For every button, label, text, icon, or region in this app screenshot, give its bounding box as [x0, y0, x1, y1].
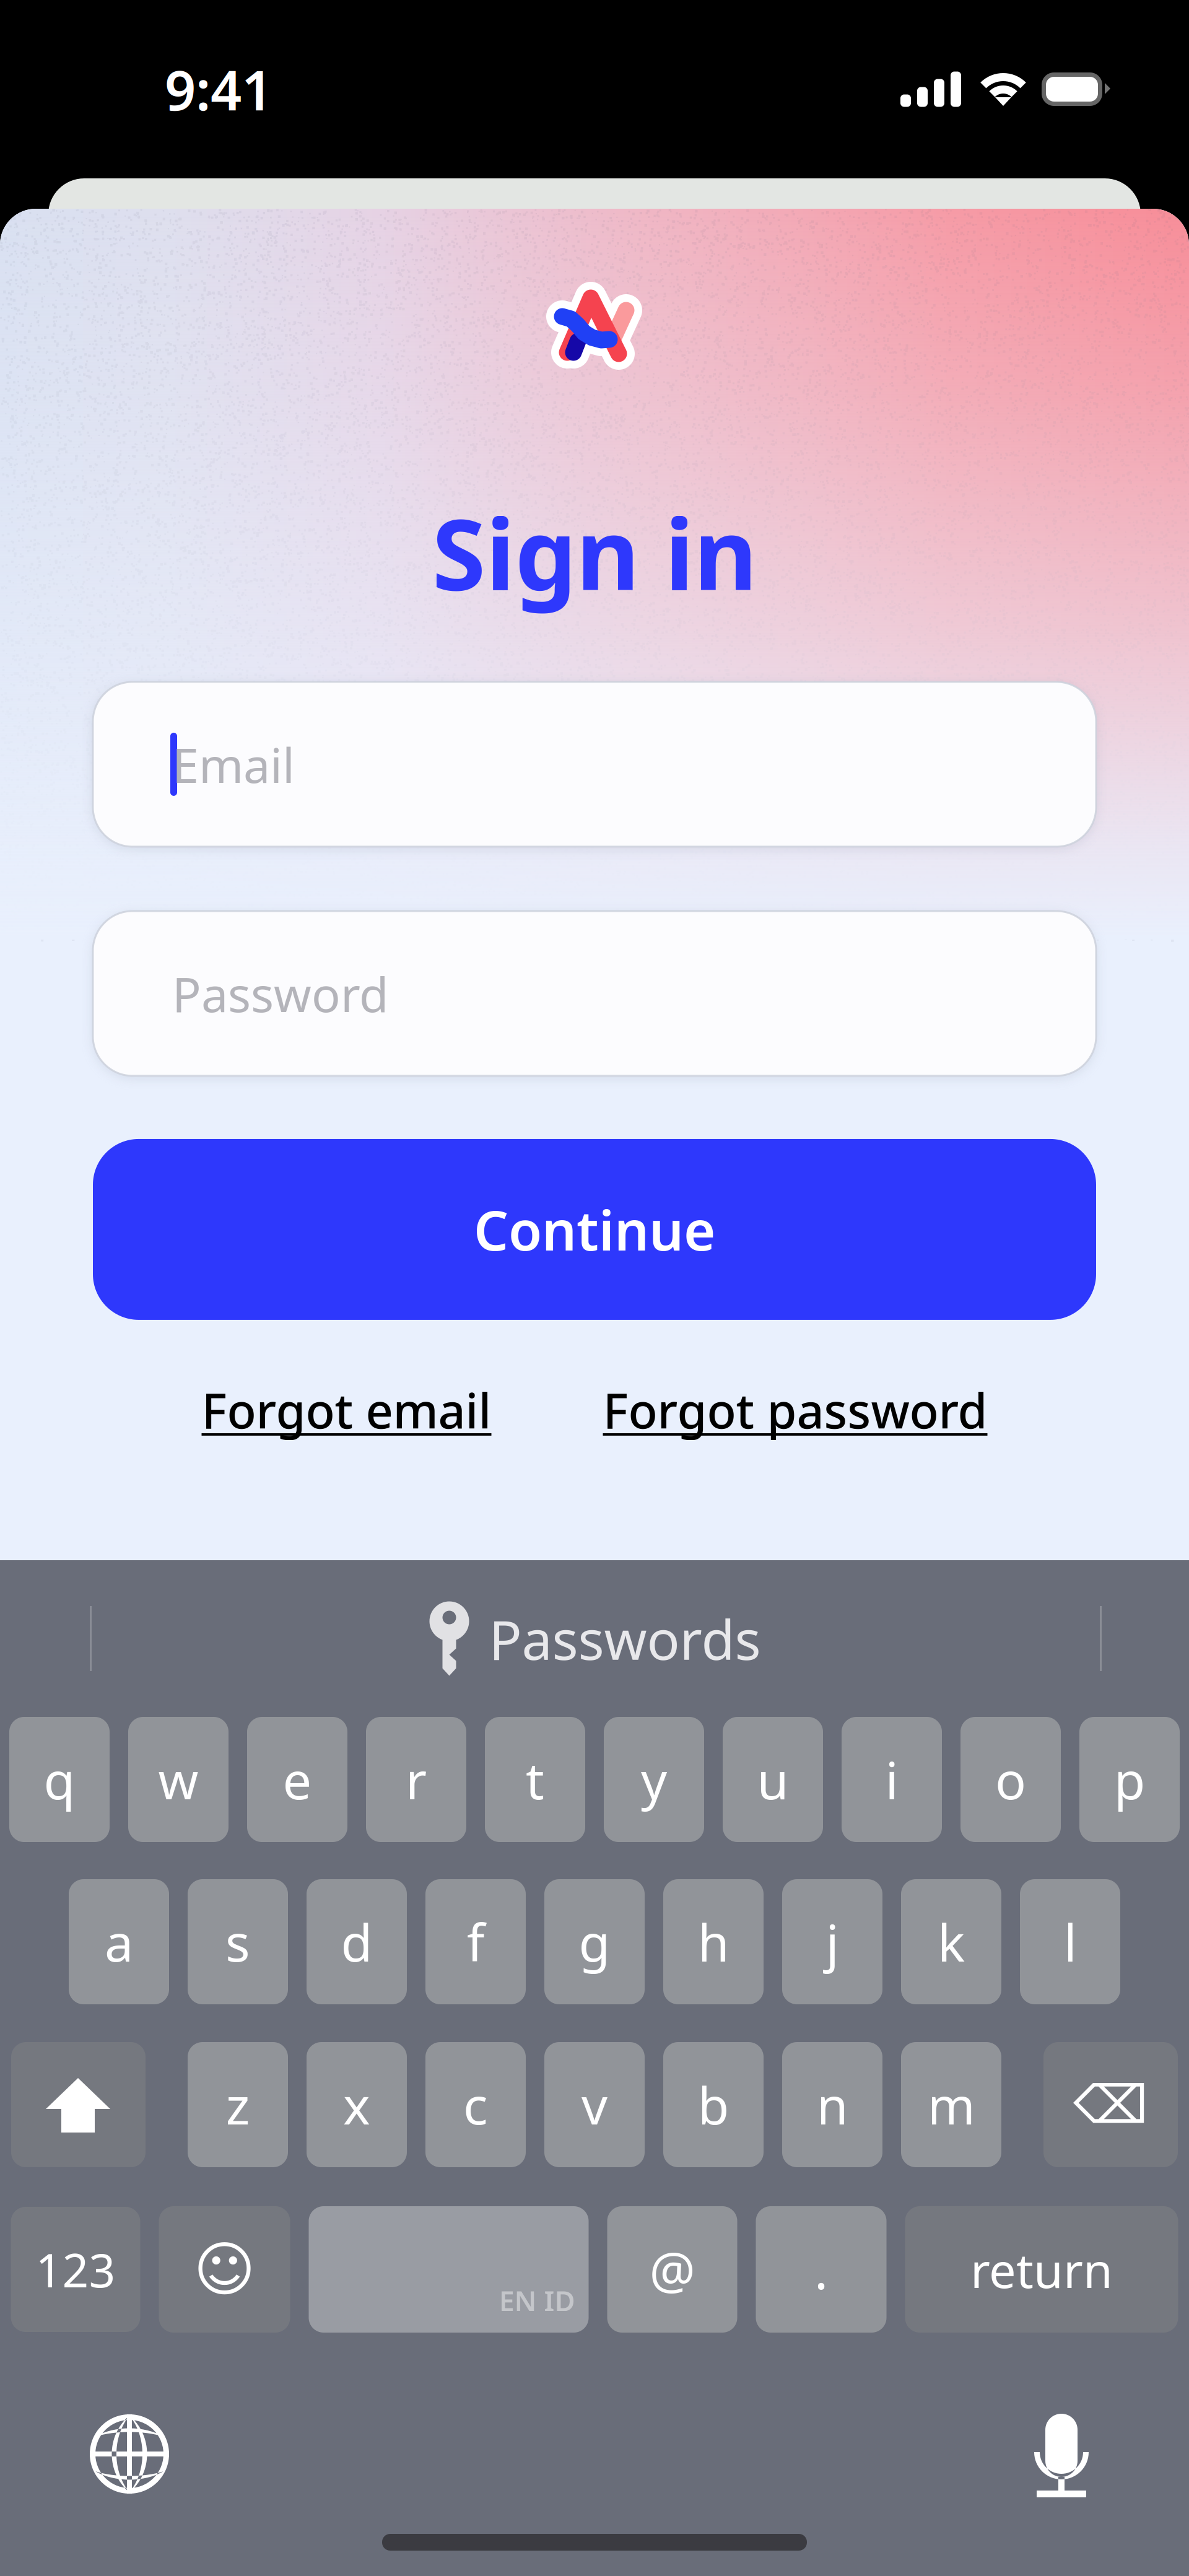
staticText: d — [341, 1908, 372, 1976]
button[interactable]: u — [723, 1717, 823, 1842]
button[interactable]: a — [69, 1879, 169, 2004]
staticText: Password — [172, 962, 389, 1025]
button[interactable]: g — [544, 1879, 645, 2004]
staticText: Forgot password — [603, 1378, 987, 1442]
button[interactable]: 123 — [11, 2207, 140, 2332]
staticText: v — [581, 2071, 608, 2139]
button[interactable]: i — [842, 1717, 942, 1842]
button[interactable]: return — [905, 2206, 1178, 2333]
staticText: r — [406, 1745, 427, 1813]
staticText: j — [826, 1908, 839, 1976]
button[interactable]: l — [1020, 1879, 1120, 2004]
button[interactable]: @ — [607, 2206, 737, 2333]
staticText: u — [757, 1745, 789, 1813]
button[interactable]: t — [485, 1717, 585, 1842]
button[interactable]: h — [663, 1879, 764, 2004]
staticText: f — [467, 1908, 484, 1976]
staticText: l — [1064, 1908, 1077, 1976]
staticText: b — [698, 2071, 729, 2139]
button[interactable]: . — [756, 2206, 886, 2333]
button[interactable]: d — [307, 1879, 407, 2004]
staticText: w — [158, 1745, 198, 1813]
staticText: c — [463, 2071, 488, 2139]
button[interactable]: Passwords — [428, 1600, 761, 1677]
button[interactable]: o — [960, 1717, 1061, 1842]
staticText: Continue — [474, 1193, 715, 1266]
staticText: . — [814, 2235, 828, 2303]
button[interactable]: Forgot password — [603, 1378, 987, 1442]
staticText: a — [105, 1908, 133, 1976]
staticText: p — [1114, 1745, 1145, 1813]
button[interactable]: Dictate — [1028, 2408, 1095, 2500]
staticText: h — [698, 1908, 729, 1976]
staticText: 9:41 — [165, 53, 272, 125]
button[interactable]: r — [366, 1717, 466, 1842]
button[interactable]: q — [9, 1717, 110, 1842]
button[interactable]: s — [188, 1879, 288, 2004]
staticText: return — [970, 2238, 1113, 2301]
button[interactable]: Emoji — [159, 2206, 290, 2333]
button[interactable]: Space — [309, 2206, 589, 2333]
button[interactable]: y — [604, 1717, 704, 1842]
button[interactable]: v — [544, 2042, 645, 2167]
button[interactable]: Change keyboard — [89, 2414, 170, 2494]
button[interactable]: b — [663, 2042, 764, 2167]
button[interactable]: x — [307, 2042, 407, 2167]
button[interactable]: Shift — [11, 2042, 146, 2167]
button[interactable]: Continue — [93, 1139, 1096, 1320]
staticText: e — [283, 1745, 312, 1813]
staticText: Sign in — [432, 487, 757, 617]
staticText: i — [885, 1745, 898, 1813]
staticText: ☺ — [194, 2236, 255, 2303]
staticText: t — [526, 1745, 544, 1813]
staticText: k — [938, 1908, 965, 1976]
staticText: Passwords — [489, 1602, 761, 1675]
button[interactable]: j — [782, 1879, 882, 2004]
staticText: ⌫ — [1073, 2075, 1148, 2135]
staticText: x — [343, 2071, 370, 2139]
staticText: y — [641, 1745, 667, 1813]
staticText: Forgot email — [202, 1378, 491, 1442]
button[interactable]: n — [782, 2042, 882, 2167]
staticText: z — [226, 2071, 250, 2139]
staticText: 123 — [36, 2239, 115, 2300]
staticText: g — [579, 1908, 610, 1976]
button[interactable]: c — [425, 2042, 526, 2167]
staticText: n — [817, 2071, 848, 2139]
staticText: EN ID — [499, 2282, 575, 2319]
staticText: Email — [172, 732, 295, 796]
button[interactable]: e — [247, 1717, 347, 1842]
button[interactable]: m — [901, 2042, 1001, 2167]
button[interactable]: f — [425, 1879, 526, 2004]
button[interactable]: Forgot email — [202, 1378, 491, 1442]
staticText: o — [995, 1745, 1026, 1813]
button[interactable]: Delete — [1043, 2042, 1178, 2167]
staticText: q — [44, 1745, 75, 1813]
button[interactable]: p — [1079, 1717, 1180, 1842]
staticText: @ — [649, 2235, 695, 2303]
button[interactable]: k — [901, 1879, 1001, 2004]
button[interactable]: z — [188, 2042, 288, 2167]
staticText: m — [927, 2071, 975, 2139]
staticText: s — [225, 1908, 250, 1976]
button[interactable]: w — [128, 1717, 229, 1842]
